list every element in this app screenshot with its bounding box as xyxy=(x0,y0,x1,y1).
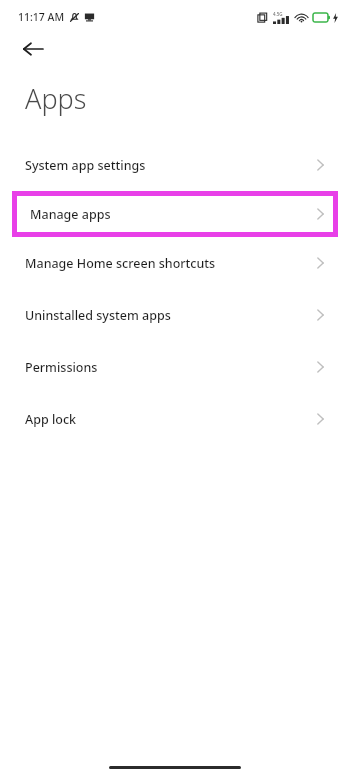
staticText: Apps xyxy=(25,80,87,117)
staticText: Manage apps xyxy=(30,206,111,223)
staticText: System app settings xyxy=(25,157,146,174)
button[interactable]: Uninstalled system apps xyxy=(0,289,350,341)
staticText: Manage Home screen shortcuts xyxy=(25,255,216,272)
staticText: 4.5G xyxy=(273,11,283,17)
button[interactable]: App lock xyxy=(0,393,350,445)
staticText: Permissions xyxy=(25,359,98,376)
button[interactable]: Permissions xyxy=(0,341,350,393)
staticText: 11:17 AM xyxy=(18,10,65,24)
staticText: App lock xyxy=(25,411,77,428)
staticText: Uninstalled system apps xyxy=(25,307,171,324)
button[interactable]: System app settings xyxy=(0,139,350,191)
button[interactable]: Manage apps xyxy=(17,196,333,232)
button[interactable]: Manage Home screen shortcuts xyxy=(0,237,350,289)
button[interactable]: Back xyxy=(16,34,50,64)
